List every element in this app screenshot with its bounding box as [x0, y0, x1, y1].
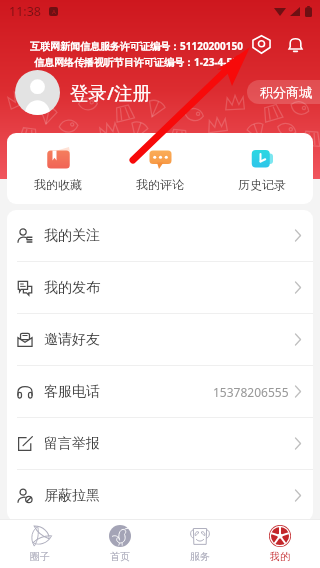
staticText: 我的收藏 — [34, 177, 82, 192]
button[interactable]: 设置 — [247, 30, 275, 58]
button[interactable]: 留言举报 — [7, 418, 313, 469]
button[interactable]: 首页 — [80, 520, 160, 568]
button[interactable]: 我的关注 — [7, 210, 313, 261]
staticText: 圈子 — [30, 550, 50, 563]
staticText: 互联网新闻信息服务许可证编号：51120200150 — [30, 39, 243, 53]
button[interactable]: 邀请好友 — [7, 314, 313, 365]
button[interactable]: 历史记录 — [211, 133, 313, 204]
staticText: 积分商城 — [260, 84, 312, 100]
staticText: 服务 — [190, 550, 210, 563]
staticText: 15378206555 — [213, 384, 289, 400]
staticText: 登录/注册 — [70, 80, 152, 105]
staticText: 留言举报 — [44, 435, 100, 453]
staticText: 我的 — [270, 550, 290, 563]
staticText: 邀请好友 — [44, 331, 100, 349]
staticText: 客服电话 — [44, 383, 100, 401]
button[interactable]: 我的评论 — [109, 133, 211, 204]
button[interactable]: 圈子 — [0, 520, 80, 568]
staticText: 我的评论 — [136, 177, 184, 192]
button[interactable]: 头像 — [15, 70, 60, 115]
button[interactable]: 我的 — [240, 520, 320, 568]
staticText: 11:38 — [9, 3, 41, 20]
staticText: 我的关注 — [44, 227, 100, 245]
button[interactable]: 客服电话 — [7, 366, 313, 417]
button[interactable]: 登录/注册 — [70, 80, 152, 105]
staticText: 历史记录 — [238, 177, 286, 192]
button[interactable]: 通知 — [281, 30, 309, 58]
button[interactable]: 服务 — [160, 520, 240, 568]
staticText: A — [52, 8, 56, 16]
staticText: 首页 — [110, 550, 130, 563]
staticText: 屏蔽拉黑 — [44, 487, 100, 505]
staticText: 我的发布 — [44, 279, 100, 297]
button[interactable]: 我的发布 — [7, 262, 313, 313]
button[interactable]: 屏蔽拉黑 — [7, 470, 313, 521]
button[interactable]: 我的收藏 — [7, 133, 109, 204]
button[interactable]: 积分商城 — [247, 80, 320, 104]
staticText: 信息网络传播视听节目许可证编号：1-23-4-55 — [34, 55, 238, 69]
